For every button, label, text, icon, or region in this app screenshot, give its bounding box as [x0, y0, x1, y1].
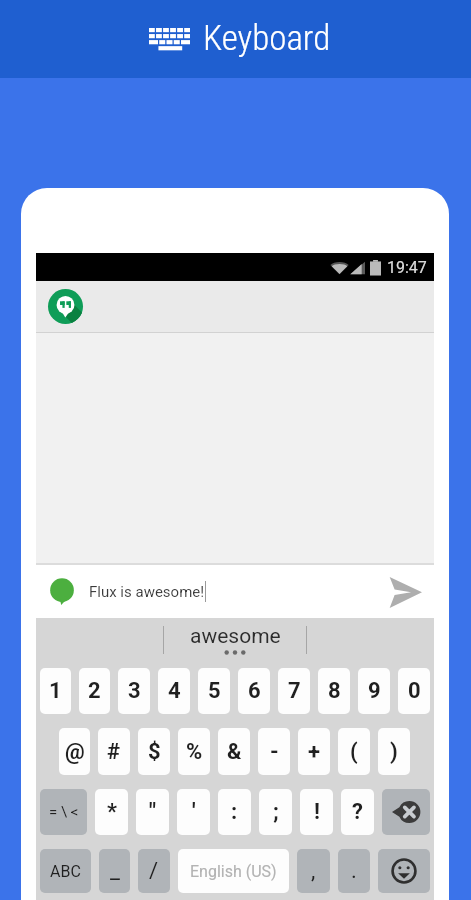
staticText: '	[192, 799, 196, 825]
button[interactable]	[36, 281, 434, 332]
staticText: +	[308, 739, 320, 765]
button[interactable]: awesome	[164, 624, 306, 655]
button[interactable]: (	[338, 728, 370, 775]
staticText: )	[390, 739, 398, 765]
button[interactable]: ;	[259, 789, 292, 835]
button[interactable]: ,	[297, 849, 330, 893]
staticText: ,	[311, 858, 316, 884]
staticText: 2	[88, 678, 101, 704]
staticText: 1	[49, 678, 62, 704]
staticText: awesome	[190, 624, 281, 649]
button[interactable]: .	[338, 849, 370, 893]
button[interactable]: /	[138, 849, 170, 893]
button[interactable]: 0	[398, 668, 430, 714]
button[interactable]: 3	[118, 668, 150, 714]
button[interactable]: = \ <	[40, 789, 87, 835]
button[interactable]: _	[99, 849, 130, 893]
staticText: 6	[248, 678, 261, 704]
staticText: = \ <	[49, 803, 79, 821]
staticText: .	[351, 858, 357, 884]
button[interactable]: 1	[40, 668, 71, 714]
staticText: 8	[328, 678, 341, 704]
button[interactable]: 8	[318, 668, 350, 714]
button[interactable]: +	[298, 728, 330, 775]
button[interactable]: Emoji	[378, 849, 430, 893]
button[interactable]: *	[95, 789, 128, 835]
staticText: _	[110, 858, 120, 884]
button[interactable]: English (US)	[178, 849, 289, 893]
button[interactable]: 9	[358, 668, 390, 714]
button[interactable]: )	[378, 728, 410, 775]
button[interactable]: Send	[382, 569, 428, 615]
staticText: ?	[352, 799, 363, 825]
button[interactable]: 5	[198, 668, 230, 714]
button[interactable]: @	[59, 728, 90, 775]
staticText: 9	[368, 678, 381, 704]
button[interactable]: %	[178, 728, 210, 775]
staticText: :	[231, 799, 238, 825]
staticText: &	[227, 739, 242, 765]
staticText: 7	[288, 678, 301, 704]
staticText: ABC	[50, 862, 81, 881]
staticText: !	[314, 799, 320, 825]
button[interactable]: 2	[79, 668, 110, 714]
staticText: $	[148, 739, 161, 765]
staticText: "	[149, 799, 157, 825]
button[interactable]: $	[138, 728, 170, 775]
staticText: ;	[273, 799, 279, 825]
button[interactable]: ABC	[40, 849, 91, 893]
staticText: /	[149, 858, 159, 884]
button[interactable]: :	[218, 789, 251, 835]
staticText: English (US)	[190, 862, 277, 881]
button[interactable]: -	[258, 728, 290, 775]
button[interactable]: !	[300, 789, 333, 835]
button[interactable]: 4	[158, 668, 190, 714]
staticText: *	[107, 799, 117, 825]
staticText: -	[270, 739, 279, 765]
staticText: 19:47	[387, 258, 427, 277]
button[interactable]: '	[177, 789, 210, 835]
staticText: #	[107, 739, 121, 765]
staticText: %	[186, 739, 203, 765]
staticText: Keyboard	[203, 18, 331, 59]
button[interactable]: Backspace	[382, 789, 430, 835]
button[interactable]: 6	[238, 668, 270, 714]
staticText: 4	[168, 678, 181, 704]
button[interactable]: "	[136, 789, 169, 835]
button[interactable]: #	[98, 728, 130, 775]
staticText: 3	[128, 678, 141, 704]
button[interactable]: 7	[278, 668, 310, 714]
button[interactable]: ?	[341, 789, 374, 835]
staticText: @	[65, 739, 85, 765]
staticText: Flux is awesome!	[89, 583, 205, 601]
staticText: 5	[208, 678, 221, 704]
button[interactable]: Keyboard	[0, 0, 471, 78]
staticText: (	[350, 739, 358, 765]
staticText: 0	[408, 678, 421, 704]
button[interactable]: &	[218, 728, 250, 775]
